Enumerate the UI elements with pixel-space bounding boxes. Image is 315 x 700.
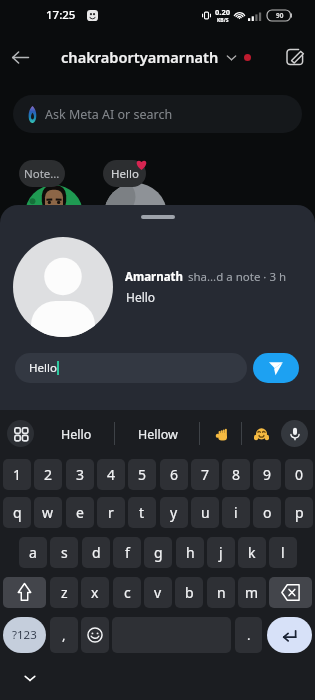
staticText: c xyxy=(124,583,131,602)
button[interactable]: x xyxy=(81,577,109,608)
button[interactable]: n xyxy=(207,577,235,608)
button[interactable]: Enter xyxy=(267,617,312,653)
button[interactable]: t xyxy=(128,497,156,528)
button[interactable]: y xyxy=(160,497,188,528)
staticText: sha…d a note · 3 h xyxy=(188,269,287,285)
button[interactable]: Hello xyxy=(42,418,110,450)
button[interactable]: i xyxy=(222,497,250,528)
button[interactable]: v xyxy=(144,577,172,608)
staticText: 1 xyxy=(13,465,22,484)
button[interactable]: d xyxy=(82,537,110,568)
button[interactable]: Waving hand emoji xyxy=(204,418,240,450)
staticText: 3 xyxy=(76,465,85,484)
staticText: Hello xyxy=(29,360,57,376)
button[interactable]: . xyxy=(235,617,262,653)
button[interactable]: 4 xyxy=(97,459,125,490)
staticText: 8 xyxy=(232,465,241,484)
button[interactable]: Hello xyxy=(103,160,146,187)
button[interactable]: l xyxy=(269,537,297,568)
staticText: s xyxy=(61,543,68,562)
staticText: z xyxy=(61,583,68,602)
button[interactable]: Ask Meta AI or search xyxy=(13,95,302,133)
staticText: d xyxy=(92,543,101,562)
button[interactable]: b xyxy=(175,577,203,608)
button[interactable]: Emoji xyxy=(81,617,109,653)
staticText: Amarnath xyxy=(125,269,184,285)
staticText: 0 xyxy=(295,465,304,484)
staticText: 90 xyxy=(276,11,284,20)
staticText: i xyxy=(234,503,238,522)
staticText: j xyxy=(219,543,223,562)
button[interactable]: m xyxy=(238,577,266,608)
button[interactable]: Smiling face emoji xyxy=(244,418,278,450)
button[interactable]: 1 xyxy=(3,459,31,490)
staticText: x xyxy=(91,583,99,602)
button[interactable]: ?123 xyxy=(3,617,46,653)
button[interactable]: 2 xyxy=(34,459,62,490)
button[interactable]: g xyxy=(144,537,172,568)
button[interactable]: 6 xyxy=(160,459,188,490)
button[interactable]: Hellow xyxy=(122,418,194,450)
button[interactable]: 0 xyxy=(285,459,313,490)
button[interactable]: f xyxy=(113,537,141,568)
button[interactable]: Hello xyxy=(15,353,247,383)
staticText: h xyxy=(186,543,195,562)
staticText: Hellow xyxy=(138,426,178,443)
button[interactable]: q xyxy=(3,497,31,528)
button[interactable]: a xyxy=(19,537,47,568)
button[interactable]: s xyxy=(50,537,78,568)
staticText: g xyxy=(154,543,163,562)
button[interactable]: 9 xyxy=(253,459,281,490)
button[interactable]: w xyxy=(34,497,62,528)
staticText: Note… xyxy=(24,166,60,182)
button[interactable]: New message xyxy=(275,40,315,74)
staticText: l xyxy=(281,543,285,562)
button[interactable]: k xyxy=(238,537,266,568)
staticText: Hello xyxy=(61,426,92,443)
staticText: w xyxy=(42,503,54,522)
staticText: Ask Meta AI or search xyxy=(45,106,173,123)
staticText: v xyxy=(154,583,162,602)
staticText: u xyxy=(201,503,210,522)
staticText: e xyxy=(76,503,84,522)
staticText: q xyxy=(13,503,22,522)
staticText: 17:25 xyxy=(46,7,76,23)
button[interactable]: o xyxy=(253,497,281,528)
staticText: , xyxy=(62,626,66,644)
staticText: m xyxy=(245,583,259,602)
staticText: p xyxy=(295,503,304,522)
button[interactable]: Send xyxy=(253,353,299,383)
staticText: t xyxy=(139,503,145,522)
button[interactable]: r xyxy=(97,497,125,528)
button[interactable]: 5 xyxy=(128,459,156,490)
staticText: ?123 xyxy=(12,627,37,643)
button[interactable]: Voice input xyxy=(281,420,308,447)
staticText: b xyxy=(185,583,194,602)
button[interactable]: 8 xyxy=(222,459,250,490)
staticText: chakrabortyamarnath xyxy=(61,47,219,67)
button[interactable]: c xyxy=(113,577,141,608)
staticText: 5 xyxy=(138,465,147,484)
staticText: Hello xyxy=(126,289,156,305)
button[interactable]: u xyxy=(191,497,219,528)
button[interactable]: j xyxy=(207,537,235,568)
button[interactable]: Hide keyboard xyxy=(17,665,43,691)
button[interactable]: 7 xyxy=(191,459,219,490)
button[interactable]: , xyxy=(50,617,78,653)
staticText: 9 xyxy=(263,465,272,484)
button[interactable]: Backspace xyxy=(269,577,312,608)
button[interactable]: Shift xyxy=(3,577,46,608)
staticText: y xyxy=(170,503,178,522)
button[interactable]: Clipboard xyxy=(7,420,34,447)
button[interactable]: Note… xyxy=(19,160,65,187)
staticText: 4 xyxy=(107,465,116,484)
button[interactable]: Back xyxy=(0,40,40,74)
button[interactable]: e xyxy=(66,497,94,528)
button[interactable]: chakrabortyamarnath xyxy=(61,47,251,67)
staticText: 7 xyxy=(201,465,210,484)
button[interactable]: h xyxy=(176,537,204,568)
button[interactable]: p xyxy=(285,497,313,528)
button[interactable]: z xyxy=(50,577,78,608)
button[interactable]: 3 xyxy=(66,459,94,490)
